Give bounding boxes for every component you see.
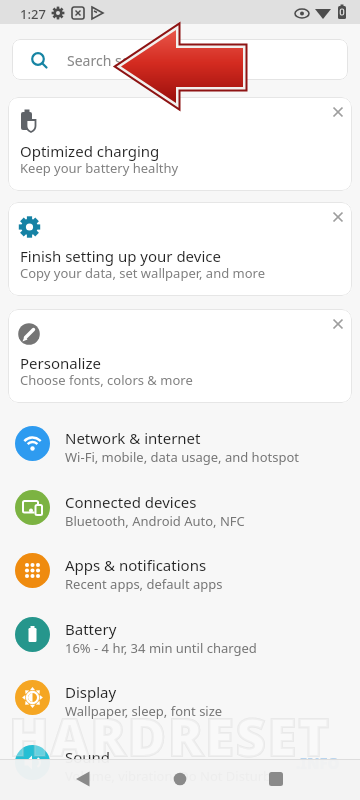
staticText: Choose fonts, colors & more <box>20 371 193 389</box>
button[interactable]: Display <box>0 666 360 729</box>
button[interactable]: Finish setting up your device <box>8 202 352 296</box>
button[interactable]: Optimized charging <box>8 97 352 191</box>
staticText: Apps & notifications <box>65 555 207 575</box>
button[interactable] <box>326 205 350 229</box>
staticText: Volume, vibration, Do Not Disturb <box>65 767 272 785</box>
button[interactable]: Network & internet <box>0 412 360 475</box>
button[interactable] <box>251 759 301 800</box>
staticText: Finish setting up your device <box>20 246 221 266</box>
staticText: Keep your battery healthy <box>20 159 179 177</box>
staticText: 16% - 4 hr, 34 min until charged <box>65 639 257 657</box>
staticText: Connected devices <box>65 492 197 512</box>
button[interactable]: Battery <box>0 603 360 666</box>
staticText: Network & internet <box>65 428 201 448</box>
staticText: Optimized charging <box>20 141 160 161</box>
button[interactable]: Connected devices <box>0 476 360 539</box>
button[interactable] <box>60 759 110 800</box>
staticText: Search settings <box>67 51 168 70</box>
staticText: Recent apps, default apps <box>65 575 223 593</box>
staticText: 1:27 <box>20 5 46 23</box>
button[interactable]: Sound <box>0 731 360 794</box>
staticText: Personalize <box>20 353 101 373</box>
staticText: Battery <box>65 619 117 639</box>
button[interactable]: Search settings <box>12 39 348 80</box>
button[interactable] <box>155 759 205 800</box>
staticText: Bluetooth, Android Auto, NFC <box>65 512 245 530</box>
staticText: Wallpaper, sleep, font size <box>65 702 223 720</box>
staticText: HARDRESET <box>9 700 331 771</box>
staticText: Copy your data, set wallpaper, and more <box>20 264 266 282</box>
button[interactable]: Apps & notifications <box>0 539 360 602</box>
button[interactable] <box>326 312 350 336</box>
staticText: HARDRESET <box>9 700 331 771</box>
button[interactable]: Personalize <box>8 309 352 403</box>
staticText: Wi-Fi, mobile, data usage, and hotspot <box>65 448 299 466</box>
button[interactable] <box>326 100 350 124</box>
staticText: Sound <box>65 747 111 767</box>
staticText: Display <box>65 682 117 702</box>
staticText: .INFO <box>296 753 340 773</box>
